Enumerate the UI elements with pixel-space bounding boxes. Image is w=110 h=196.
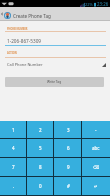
staticText: 7	[12, 164, 15, 170]
staticText: 4	[12, 145, 15, 151]
staticText: #	[67, 183, 70, 189]
staticText: 1-206-867-5309	[7, 38, 42, 44]
staticText: Write Tag	[47, 80, 62, 84]
staticText: 23:26	[97, 1, 109, 7]
button[interactable]: 7	[0, 158, 27, 176]
staticText: 22%	[85, 2, 93, 7]
button[interactable]: 0	[27, 177, 54, 195]
button[interactable]: -	[82, 121, 110, 138]
button[interactable]: .	[0, 177, 27, 195]
staticText: ⌫	[93, 165, 100, 170]
staticText: 0	[39, 183, 42, 189]
button[interactable]: Call Phone Number	[0, 58, 110, 70]
button[interactable]: 2	[27, 121, 54, 138]
staticText: 8	[39, 164, 42, 170]
staticText: PHONE NUMBER	[7, 27, 28, 30]
staticText: 3	[67, 127, 70, 133]
staticText: 5	[39, 145, 42, 151]
staticText: abc	[92, 145, 100, 151]
staticText: 1	[12, 127, 15, 133]
staticText: ACTION	[7, 51, 17, 54]
button[interactable]: abc	[82, 139, 110, 157]
button[interactable]: Write Tag	[5, 77, 104, 87]
staticText: Call Phone Number	[7, 62, 43, 67]
button[interactable]: 9	[54, 158, 82, 176]
button[interactable]: 6	[54, 139, 82, 157]
staticText: .	[13, 183, 15, 189]
button[interactable]: #	[54, 177, 82, 195]
button[interactable]: Navigate up	[0, 7, 4, 21]
staticText: 6	[67, 145, 70, 151]
button[interactable]: 5	[27, 139, 54, 157]
button[interactable]: 4	[0, 139, 27, 157]
button[interactable]: ↵	[82, 177, 110, 195]
other: Open dropdown	[102, 63, 106, 67]
staticText: 2	[39, 127, 42, 133]
staticText: ↵	[94, 184, 98, 189]
staticText: 9	[67, 164, 70, 170]
button[interactable]: 1	[0, 121, 27, 138]
staticText: -	[95, 127, 97, 133]
button[interactable]: 3	[54, 121, 82, 138]
button[interactable]: ⌫	[82, 158, 110, 176]
button[interactable]: 8	[27, 158, 54, 176]
staticText: Create Phone Tag	[13, 13, 51, 19]
